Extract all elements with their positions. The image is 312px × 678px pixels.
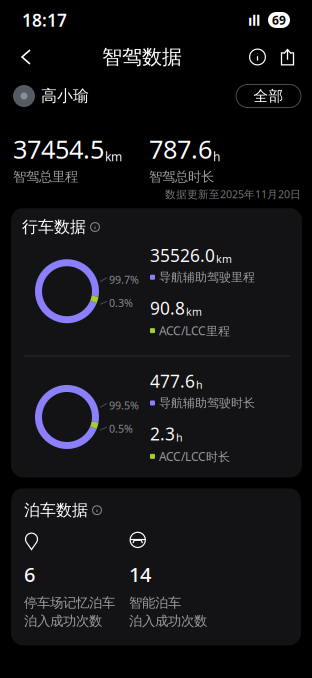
staticText: 智驾总时长 — [149, 169, 214, 185]
staticText: 0.5% — [109, 421, 133, 436]
staticText: ıll — [248, 10, 260, 30]
staticText: 14 — [129, 561, 151, 588]
staticText: km — [186, 304, 202, 319]
staticText: 6 — [24, 561, 35, 588]
staticText: 477.6 — [150, 370, 195, 393]
staticText: 泊入成功次数 — [24, 613, 102, 629]
staticText: 智能泊车 — [129, 595, 181, 611]
staticText: 35526.0 — [150, 244, 215, 267]
staticText: 行车数据 — [22, 217, 86, 237]
staticText: h — [213, 149, 220, 165]
staticText: 数据更新至2025年11月20日 — [165, 187, 301, 201]
staticText: 导航辅助驾驶时长 — [159, 396, 255, 410]
staticText: 泊入成功次数 — [129, 613, 207, 629]
staticText: km — [105, 149, 122, 165]
staticText: 高小瑜 — [41, 86, 89, 106]
staticText: 69 — [272, 12, 286, 28]
staticText: ACC/LCC里程 — [159, 323, 230, 339]
button[interactable]: Back — [10, 40, 42, 74]
staticText: 37454.5 — [13, 132, 104, 166]
staticText: 智驾数据 — [102, 45, 182, 69]
staticText: 99.7% — [109, 273, 139, 287]
staticText: 停车场记忆泊车 — [24, 595, 115, 611]
staticText: 0.3% — [109, 296, 133, 310]
staticText: 99.5% — [109, 398, 139, 412]
staticText: 智驾总里程 — [13, 169, 78, 185]
staticText: 全部 — [253, 87, 283, 105]
staticText: 18:17 — [22, 8, 67, 31]
staticText: 787.6 — [149, 132, 212, 166]
staticText: 2.3 — [150, 422, 175, 445]
staticText: h — [196, 377, 203, 392]
button[interactable]: Share — [273, 40, 302, 74]
staticText: ACC/LCC时长 — [159, 448, 230, 464]
button[interactable]: Info — [242, 40, 273, 74]
staticText: 导航辅助驾驶里程 — [159, 270, 255, 285]
staticText: 90.8 — [150, 297, 185, 320]
button[interactable]: 全部 — [236, 84, 301, 107]
staticText: h — [176, 430, 183, 444]
staticText: km — [216, 252, 232, 266]
staticText: 泊车数据 — [24, 500, 88, 520]
